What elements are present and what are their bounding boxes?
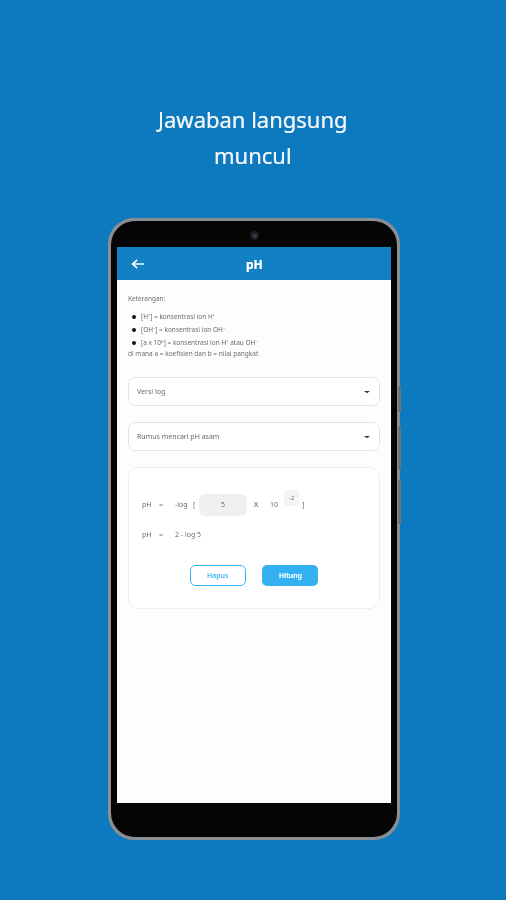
button[interactable]: Hitung (262, 565, 318, 586)
staticText: pH (142, 500, 152, 510)
button[interactable]: -2 (284, 490, 299, 506)
staticText: 5 (221, 500, 226, 510)
staticText: 2 - log 5 (175, 530, 202, 540)
button[interactable]: Back (125, 251, 151, 277)
staticText: = (159, 530, 164, 540)
button[interactable]: Rumus mencari pH asam (128, 422, 380, 451)
staticText: 10 (270, 500, 279, 510)
staticText: [OH⁻] = konsentrasi ion OH⁻ (141, 325, 226, 334)
staticText: Versi log (137, 387, 166, 397)
staticText: [ (193, 500, 196, 510)
button[interactable]: Hapus (190, 565, 246, 586)
staticText: [a x 10ᵇ] = konsentrasi ion H⁺ atau OH⁻ (141, 338, 258, 347)
staticText: -log (175, 500, 188, 510)
staticText: X (254, 500, 259, 510)
staticText: pH (142, 530, 152, 540)
staticText: = (159, 500, 164, 510)
staticText: Jawaban langsung (158, 104, 348, 134)
staticText: muncul (214, 140, 292, 170)
staticText: Hapus (207, 571, 229, 581)
button[interactable]: Versi log (128, 377, 380, 406)
staticText: ] (302, 500, 305, 510)
staticText: Rumus mencari pH asam (137, 432, 220, 442)
button[interactable]: 5 (199, 494, 247, 516)
staticText: Hitung (279, 571, 302, 581)
staticText: [H⁺] = konsentrasi ion H⁺ (141, 312, 215, 321)
staticText: di mana a = koefisien dan b = nilai pang… (128, 349, 259, 358)
staticText: Keterangan: (128, 294, 166, 303)
staticText: -2 (289, 494, 295, 502)
staticText: pH (246, 256, 263, 272)
